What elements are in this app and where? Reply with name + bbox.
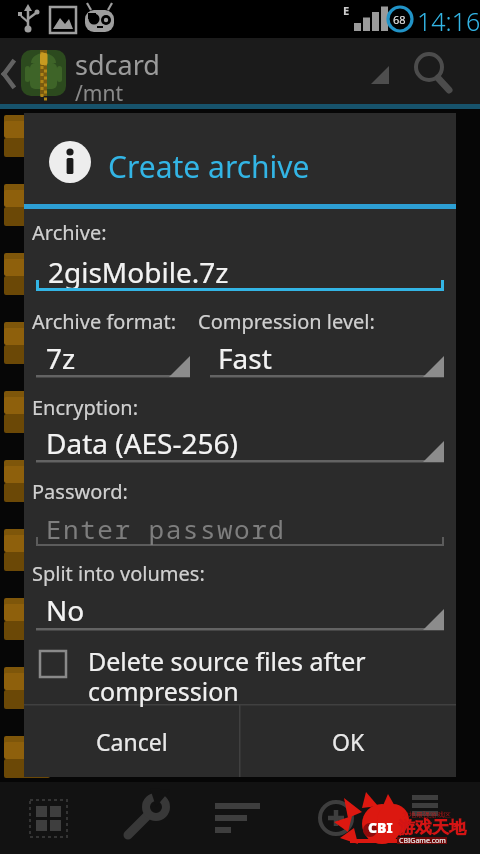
staticText: 天地最强游戏区 (402, 810, 451, 819)
staticText: Split into volumes: (32, 560, 205, 587)
staticText: /mnt (75, 79, 124, 108)
staticText: E (343, 3, 350, 18)
staticText: Enter password (46, 511, 286, 546)
staticText: Delete source files after compression (88, 644, 366, 708)
staticText: Password: (32, 478, 128, 505)
staticText: Archive: (32, 219, 107, 246)
button[interactable] (36, 498, 444, 546)
staticText: Encryption: (32, 394, 139, 421)
staticText: Fast (218, 339, 272, 377)
staticText: Archive format: (32, 308, 177, 335)
staticText: CBI (368, 818, 393, 837)
button[interactable] (384, 782, 480, 854)
staticText: Data (AES-256) (46, 424, 238, 462)
button[interactable] (210, 328, 444, 378)
button[interactable] (0, 782, 96, 854)
staticText: No (46, 591, 85, 629)
button[interactable]: Cancel (24, 705, 239, 777)
staticText: 68 (393, 12, 406, 27)
button[interactable] (36, 643, 444, 701)
staticText: CBIGame.com (399, 836, 446, 846)
staticText: Cancel (96, 726, 168, 757)
button[interactable] (192, 782, 288, 854)
button[interactable]: OK (241, 705, 456, 777)
button[interactable] (36, 413, 444, 463)
staticText: OK (332, 726, 365, 757)
staticText: sdcard (75, 46, 160, 83)
staticText: 14:16 (417, 4, 480, 38)
staticText: Compression level: (198, 308, 375, 335)
button[interactable] (36, 328, 190, 378)
button[interactable] (36, 243, 444, 291)
staticText: 游戏天地 (398, 817, 466, 838)
staticText: Create archive (108, 146, 310, 187)
staticText: 2gisMobile.7z (48, 253, 229, 291)
button[interactable] (288, 782, 384, 854)
button[interactable] (96, 782, 192, 854)
staticText: 7z (46, 339, 76, 377)
button[interactable] (36, 580, 444, 630)
button[interactable] (400, 44, 460, 100)
